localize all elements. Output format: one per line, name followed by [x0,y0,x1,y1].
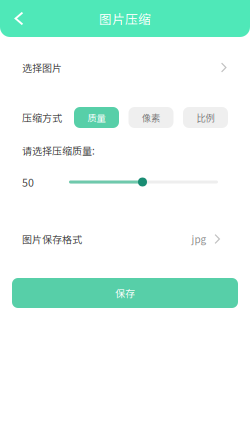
staticText: 50 [22,174,34,190]
button[interactable]: 质量 [74,107,119,128]
button[interactable]: 图片保存格式 [0,233,250,245]
button[interactable]: 选择图片 [0,51,250,84]
staticText: 质量 [87,111,105,124]
staticText: 请选择压缩质量: [22,143,95,158]
button[interactable]: 保存 [12,278,238,308]
button[interactable]: 像素 [128,107,173,128]
button[interactable]: 比例 [183,107,228,128]
staticText: 压缩方式 [22,110,62,125]
staticText: 像素 [142,111,160,124]
staticText: 图片保存格式 [22,232,82,246]
staticText: 图片压缩 [99,9,151,28]
button[interactable]: Back [8,5,30,31]
staticText: jpg [191,232,206,246]
staticText: 选择图片 [22,60,62,75]
staticText: 比例 [196,111,214,124]
staticText: 保存 [115,286,135,300]
